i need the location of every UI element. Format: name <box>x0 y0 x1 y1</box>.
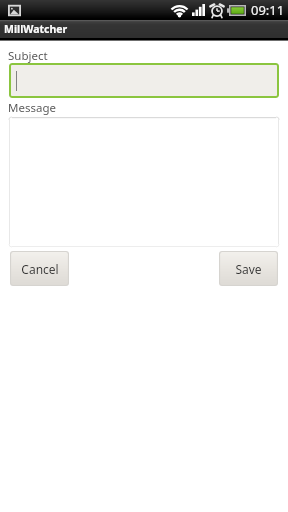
staticText: 09:11 <box>251 1 285 19</box>
other: Notification <box>8 4 21 17</box>
button[interactable] <box>9 117 279 247</box>
staticText: Cancel <box>21 261 59 277</box>
staticText: Subject <box>8 48 48 64</box>
button[interactable]: Cancel <box>10 251 69 286</box>
button[interactable] <box>9 63 279 98</box>
staticText: MillWatcher <box>4 22 68 36</box>
button[interactable]: Save <box>219 251 278 286</box>
staticText: Message <box>8 100 56 116</box>
staticText: Save <box>235 261 262 277</box>
